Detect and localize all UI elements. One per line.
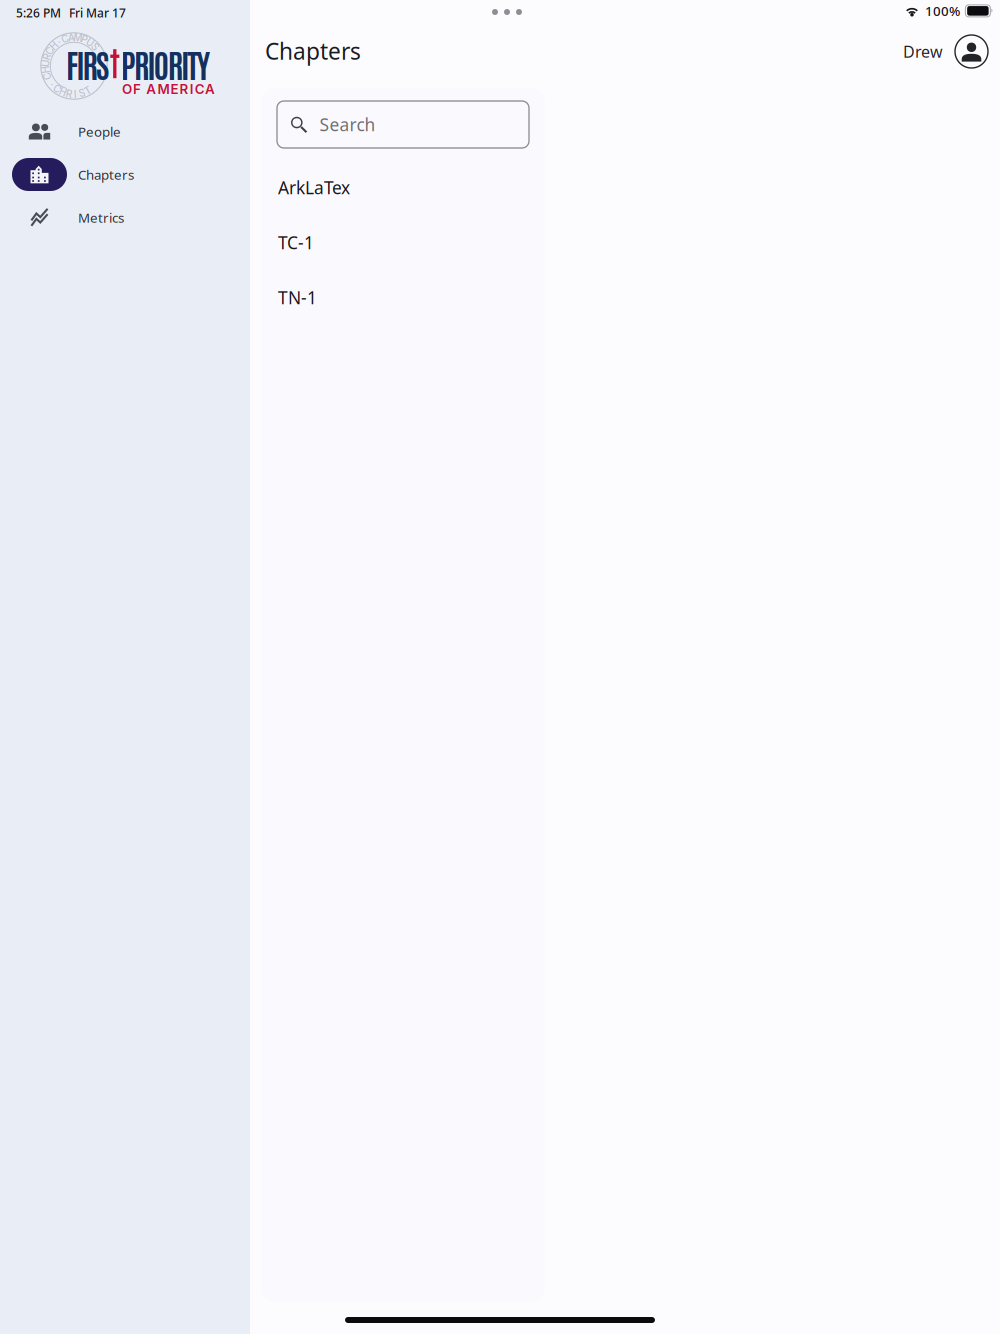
staticText: U bbox=[70, 32, 77, 43]
staticText: S bbox=[71, 32, 77, 43]
staticText: PRIORITY bbox=[121, 43, 211, 84]
button[interactable]: TC-1 bbox=[261, 215, 545, 270]
staticText: C bbox=[70, 32, 77, 43]
staticText: T bbox=[71, 32, 77, 43]
button[interactable]: TN-1 bbox=[261, 270, 545, 325]
staticText: TC-1 bbox=[278, 231, 314, 254]
staticText: ArkLaTex bbox=[278, 176, 350, 199]
staticText: S bbox=[71, 32, 77, 43]
staticText: OF AMERICA bbox=[122, 81, 215, 97]
staticText: M bbox=[69, 32, 78, 43]
button[interactable]: Search bbox=[277, 101, 529, 148]
staticText: Chapters bbox=[78, 166, 134, 183]
staticText: Search bbox=[319, 113, 375, 136]
staticText: Chapters bbox=[265, 36, 361, 66]
staticText: TN-1 bbox=[278, 286, 317, 309]
staticText: 5:26 PM bbox=[16, 5, 61, 21]
staticText: · bbox=[72, 32, 75, 43]
staticText: R bbox=[71, 32, 77, 43]
staticText: C bbox=[70, 32, 77, 43]
staticText: R bbox=[71, 32, 77, 43]
button[interactable]: Metrics bbox=[0, 201, 250, 234]
staticText: A bbox=[70, 32, 77, 43]
staticText: · bbox=[72, 32, 75, 43]
staticText: H bbox=[70, 32, 77, 43]
staticText: FIRS bbox=[66, 43, 110, 84]
staticText: Metrics bbox=[78, 209, 124, 226]
staticText: P bbox=[71, 32, 77, 43]
staticText: C bbox=[70, 32, 77, 43]
staticText: H bbox=[70, 32, 77, 43]
staticText: H bbox=[70, 32, 77, 43]
staticText: Drew bbox=[903, 41, 943, 62]
button[interactable]: People bbox=[0, 115, 250, 148]
staticText: People bbox=[78, 123, 121, 140]
staticText: 100% bbox=[925, 2, 960, 20]
staticText: C bbox=[70, 32, 77, 43]
staticText: I bbox=[72, 32, 75, 43]
button[interactable]: Drew bbox=[903, 34, 989, 69]
staticText: Fri Mar 17 bbox=[69, 5, 126, 21]
button[interactable]: Chapters bbox=[0, 158, 250, 191]
button[interactable]: ArkLaTex bbox=[261, 160, 545, 215]
staticText: U bbox=[70, 32, 77, 43]
